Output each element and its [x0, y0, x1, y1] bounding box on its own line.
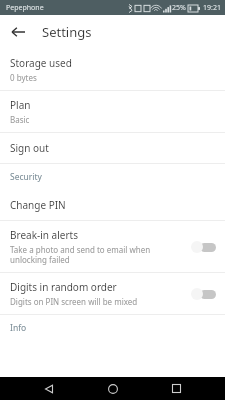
staticText: Plan	[10, 98, 31, 112]
button[interactable]: Toggle	[191, 239, 217, 255]
staticText: Break-in alerts	[10, 228, 78, 242]
button[interactable]: Back	[6, 20, 30, 44]
staticText: Change PIN	[10, 198, 66, 212]
button[interactable]: Storage used	[0, 49, 225, 90]
staticText: Digits on PIN screen will be mixed	[10, 296, 138, 307]
button[interactable]: Toggle	[191, 286, 217, 302]
staticText: Take a photo and send to email when unlo…	[10, 244, 183, 265]
button[interactable]: Plan	[0, 91, 225, 132]
button[interactable]: Change PIN	[0, 190, 225, 220]
staticText: Sign out	[10, 141, 49, 155]
button[interactable]: Back	[34, 377, 64, 400]
button[interactable]: Break-in alerts	[0, 221, 225, 272]
staticText: Digits in random order	[10, 280, 117, 294]
staticText: Security	[10, 171, 42, 183]
button[interactable]: Sign out	[0, 133, 225, 163]
staticText: Info	[10, 322, 27, 334]
staticText: 19:21	[203, 3, 221, 13]
staticText: Settings	[42, 23, 92, 41]
staticText: Basic	[10, 114, 30, 125]
button[interactable]: Recent apps	[161, 377, 191, 400]
staticText: Storage used	[10, 56, 72, 70]
button[interactable]: Digits in random order	[0, 273, 225, 314]
staticText: 25%	[172, 3, 186, 13]
staticText: 0 bytes	[10, 72, 37, 83]
staticText: Pepephone	[6, 3, 44, 13]
button[interactable]: Home	[98, 377, 128, 400]
